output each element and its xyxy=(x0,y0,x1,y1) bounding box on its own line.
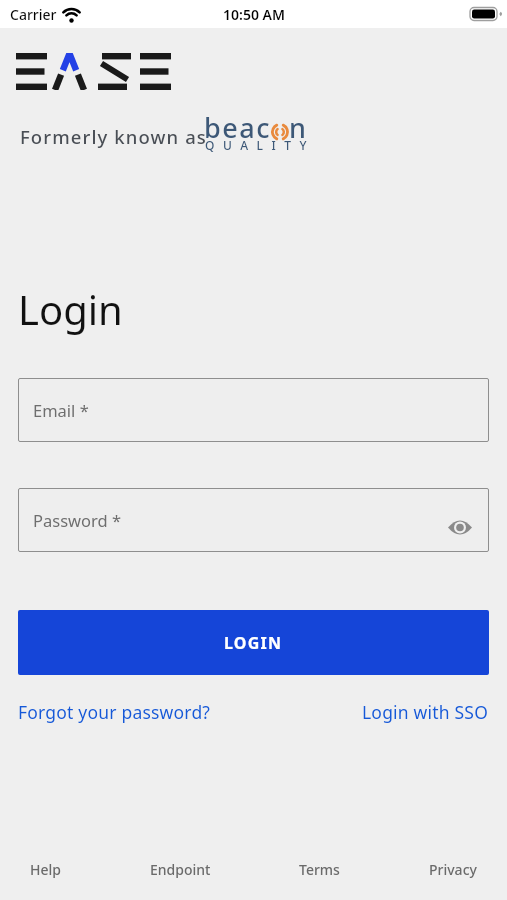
staticText: Formerly known as xyxy=(20,124,207,149)
button[interactable]: Password * xyxy=(18,488,489,552)
staticText: Terms xyxy=(299,860,340,879)
button[interactable]: Privacy xyxy=(429,860,477,879)
staticText: n xyxy=(289,109,306,146)
staticText: Email * xyxy=(33,399,89,421)
button[interactable]: Email * xyxy=(18,378,489,442)
staticText: 10:50 AM xyxy=(223,5,285,24)
staticText: Privacy xyxy=(429,860,477,879)
staticText: beac xyxy=(204,109,271,146)
staticText: Help xyxy=(30,860,61,879)
staticText: QUALITY xyxy=(205,137,315,153)
staticText: Password * xyxy=(33,509,122,531)
button[interactable] xyxy=(446,513,474,541)
staticText: Endpoint xyxy=(150,860,211,879)
button[interactable]: Endpoint xyxy=(150,860,211,879)
staticText: LOGIN xyxy=(224,632,283,654)
button[interactable]: LOGIN xyxy=(18,610,489,675)
button[interactable]: Forgot your password? xyxy=(18,700,211,724)
staticText: Carrier xyxy=(10,5,57,24)
button[interactable]: Help xyxy=(30,860,61,879)
button[interactable]: Terms xyxy=(299,860,340,879)
staticText: Login xyxy=(18,282,123,336)
button[interactable]: Login with SSO xyxy=(362,700,489,724)
